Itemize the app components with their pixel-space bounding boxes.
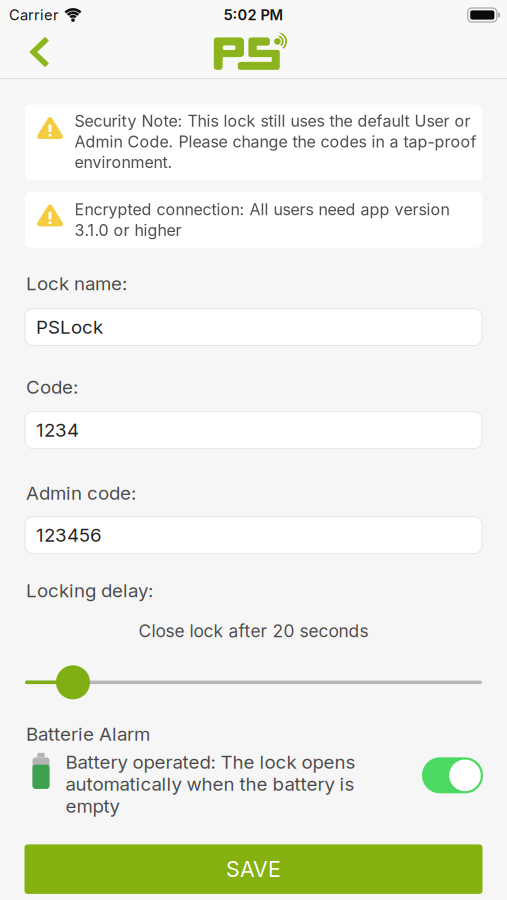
button[interactable]: PSLock <box>25 308 482 345</box>
button[interactable]: Locking delay slider <box>25 665 482 699</box>
staticText: Locking delay: <box>26 579 153 601</box>
staticText: Batterie Alarm <box>26 723 150 745</box>
staticText: Carrier <box>9 6 59 24</box>
button[interactable]: 123456 <box>25 517 482 554</box>
button[interactable]: Back <box>0 37 49 71</box>
staticText: SAVE <box>226 857 281 882</box>
staticText: Lock name: <box>26 272 127 294</box>
button[interactable]: 1234 <box>25 411 482 448</box>
button[interactable]: SAVE <box>24 844 482 894</box>
staticText: Admin code: <box>26 482 136 504</box>
staticText: Close lock after 20 seconds <box>138 621 368 641</box>
staticText: 5:02 PM <box>223 6 283 24</box>
staticText: Battery operated: The lock opens automat… <box>65 751 355 817</box>
staticText: PSLock <box>36 316 103 338</box>
staticText: 123456 <box>36 524 102 546</box>
staticText: 1234 <box>36 419 79 441</box>
button[interactable]: Battery alarm toggle <box>422 751 483 793</box>
staticText: Encrypted connection: All users need app… <box>74 200 449 240</box>
staticText: Security Note: This lock still uses the … <box>74 111 476 172</box>
staticText: Code: <box>26 376 78 398</box>
